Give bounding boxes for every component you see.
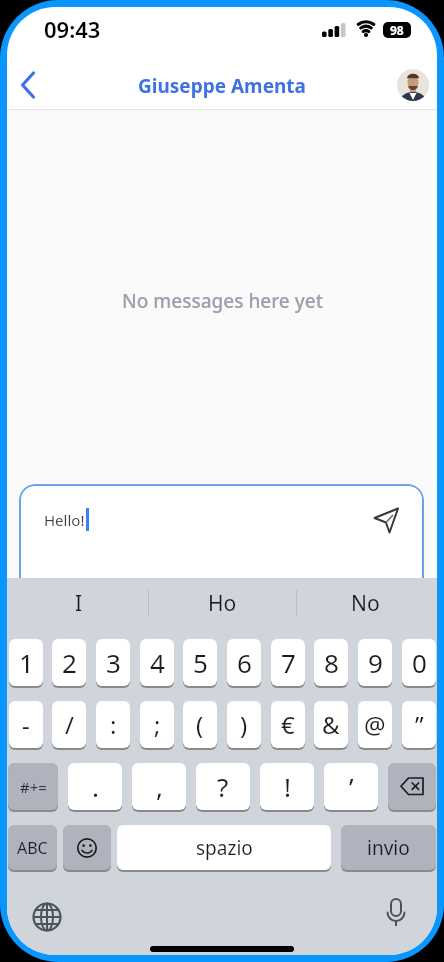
staticText: ! <box>284 769 291 804</box>
button[interactable]: , <box>132 763 186 810</box>
staticText: 0 <box>412 645 427 680</box>
button[interactable]: / <box>52 701 86 748</box>
button[interactable]: 4 <box>140 639 174 686</box>
staticText: 5 <box>193 645 208 680</box>
staticText: #+= <box>20 777 47 797</box>
staticText: 98 <box>390 22 404 38</box>
button[interactable]: Ho <box>150 588 294 618</box>
staticText: 3 <box>106 645 121 680</box>
staticText: ? <box>217 769 229 804</box>
button[interactable] <box>381 896 411 936</box>
button[interactable]: ( <box>183 701 217 748</box>
button[interactable]: ABC <box>8 825 57 870</box>
staticText: : <box>110 708 117 741</box>
button[interactable]: 8 <box>314 639 348 686</box>
button[interactable]: ? <box>196 763 250 810</box>
staticText: No messages here yet <box>122 288 323 314</box>
staticText: & <box>322 708 340 741</box>
button[interactable]: - <box>9 701 43 748</box>
staticText: 2 <box>62 645 77 680</box>
staticText: , <box>156 769 163 804</box>
staticText: Hello! <box>44 510 85 530</box>
staticText: 9 <box>368 645 383 680</box>
button[interactable]: : <box>96 701 130 748</box>
staticText: No <box>351 589 380 618</box>
staticText: Ho <box>208 589 237 618</box>
staticText: 7 <box>281 645 296 680</box>
button[interactable]: 0 <box>402 639 436 686</box>
staticText: € <box>281 708 295 741</box>
staticText: 4 <box>150 645 165 680</box>
button[interactable] <box>357 498 399 534</box>
button[interactable]: 7 <box>271 639 305 686</box>
button[interactable]: #+= <box>8 763 58 810</box>
button[interactable]: @ <box>358 701 392 748</box>
button[interactable]: I <box>7 588 150 618</box>
staticText: @ <box>364 708 386 741</box>
button[interactable] <box>13 65 49 105</box>
button[interactable]: ! <box>260 763 314 810</box>
button[interactable]: 5 <box>183 639 217 686</box>
button[interactable] <box>63 825 111 870</box>
staticText: / <box>65 708 74 741</box>
button[interactable] <box>388 763 436 810</box>
staticText: spazio <box>196 835 253 861</box>
button[interactable] <box>29 899 65 935</box>
staticText: 6 <box>237 645 252 680</box>
button[interactable]: invio <box>341 825 436 870</box>
button[interactable]: 9 <box>358 639 392 686</box>
staticText: . <box>92 769 99 804</box>
button[interactable]: No <box>294 588 437 618</box>
staticText: ABC <box>17 837 48 859</box>
staticText: 1 <box>19 645 34 680</box>
button[interactable]: ’ <box>324 763 378 810</box>
button[interactable]: ; <box>140 701 174 748</box>
staticText: ; <box>154 708 161 741</box>
button[interactable]: € <box>271 701 305 748</box>
button[interactable]: 1 <box>9 639 43 686</box>
button[interactable]: & <box>314 701 348 748</box>
button[interactable]: . <box>68 763 122 810</box>
button[interactable]: ) <box>227 701 261 748</box>
button[interactable]: 2 <box>52 639 86 686</box>
button[interactable]: 3 <box>96 639 130 686</box>
staticText: 09:43 <box>44 14 101 44</box>
button[interactable] <box>397 69 429 101</box>
button[interactable]: Hello! <box>19 484 424 594</box>
staticText: ( <box>196 708 204 741</box>
button[interactable]: spazio <box>117 825 331 870</box>
staticText: Giuseppe Amenta <box>138 73 306 99</box>
button[interactable]: 6 <box>227 639 261 686</box>
staticText: ’ <box>349 769 354 804</box>
staticText: invio <box>367 835 410 861</box>
staticText: I <box>75 589 83 618</box>
button[interactable]: ” <box>402 701 436 748</box>
staticText: ” <box>415 708 424 741</box>
staticText: - <box>22 708 30 741</box>
staticText: 8 <box>324 645 339 680</box>
staticText: ) <box>240 708 248 741</box>
